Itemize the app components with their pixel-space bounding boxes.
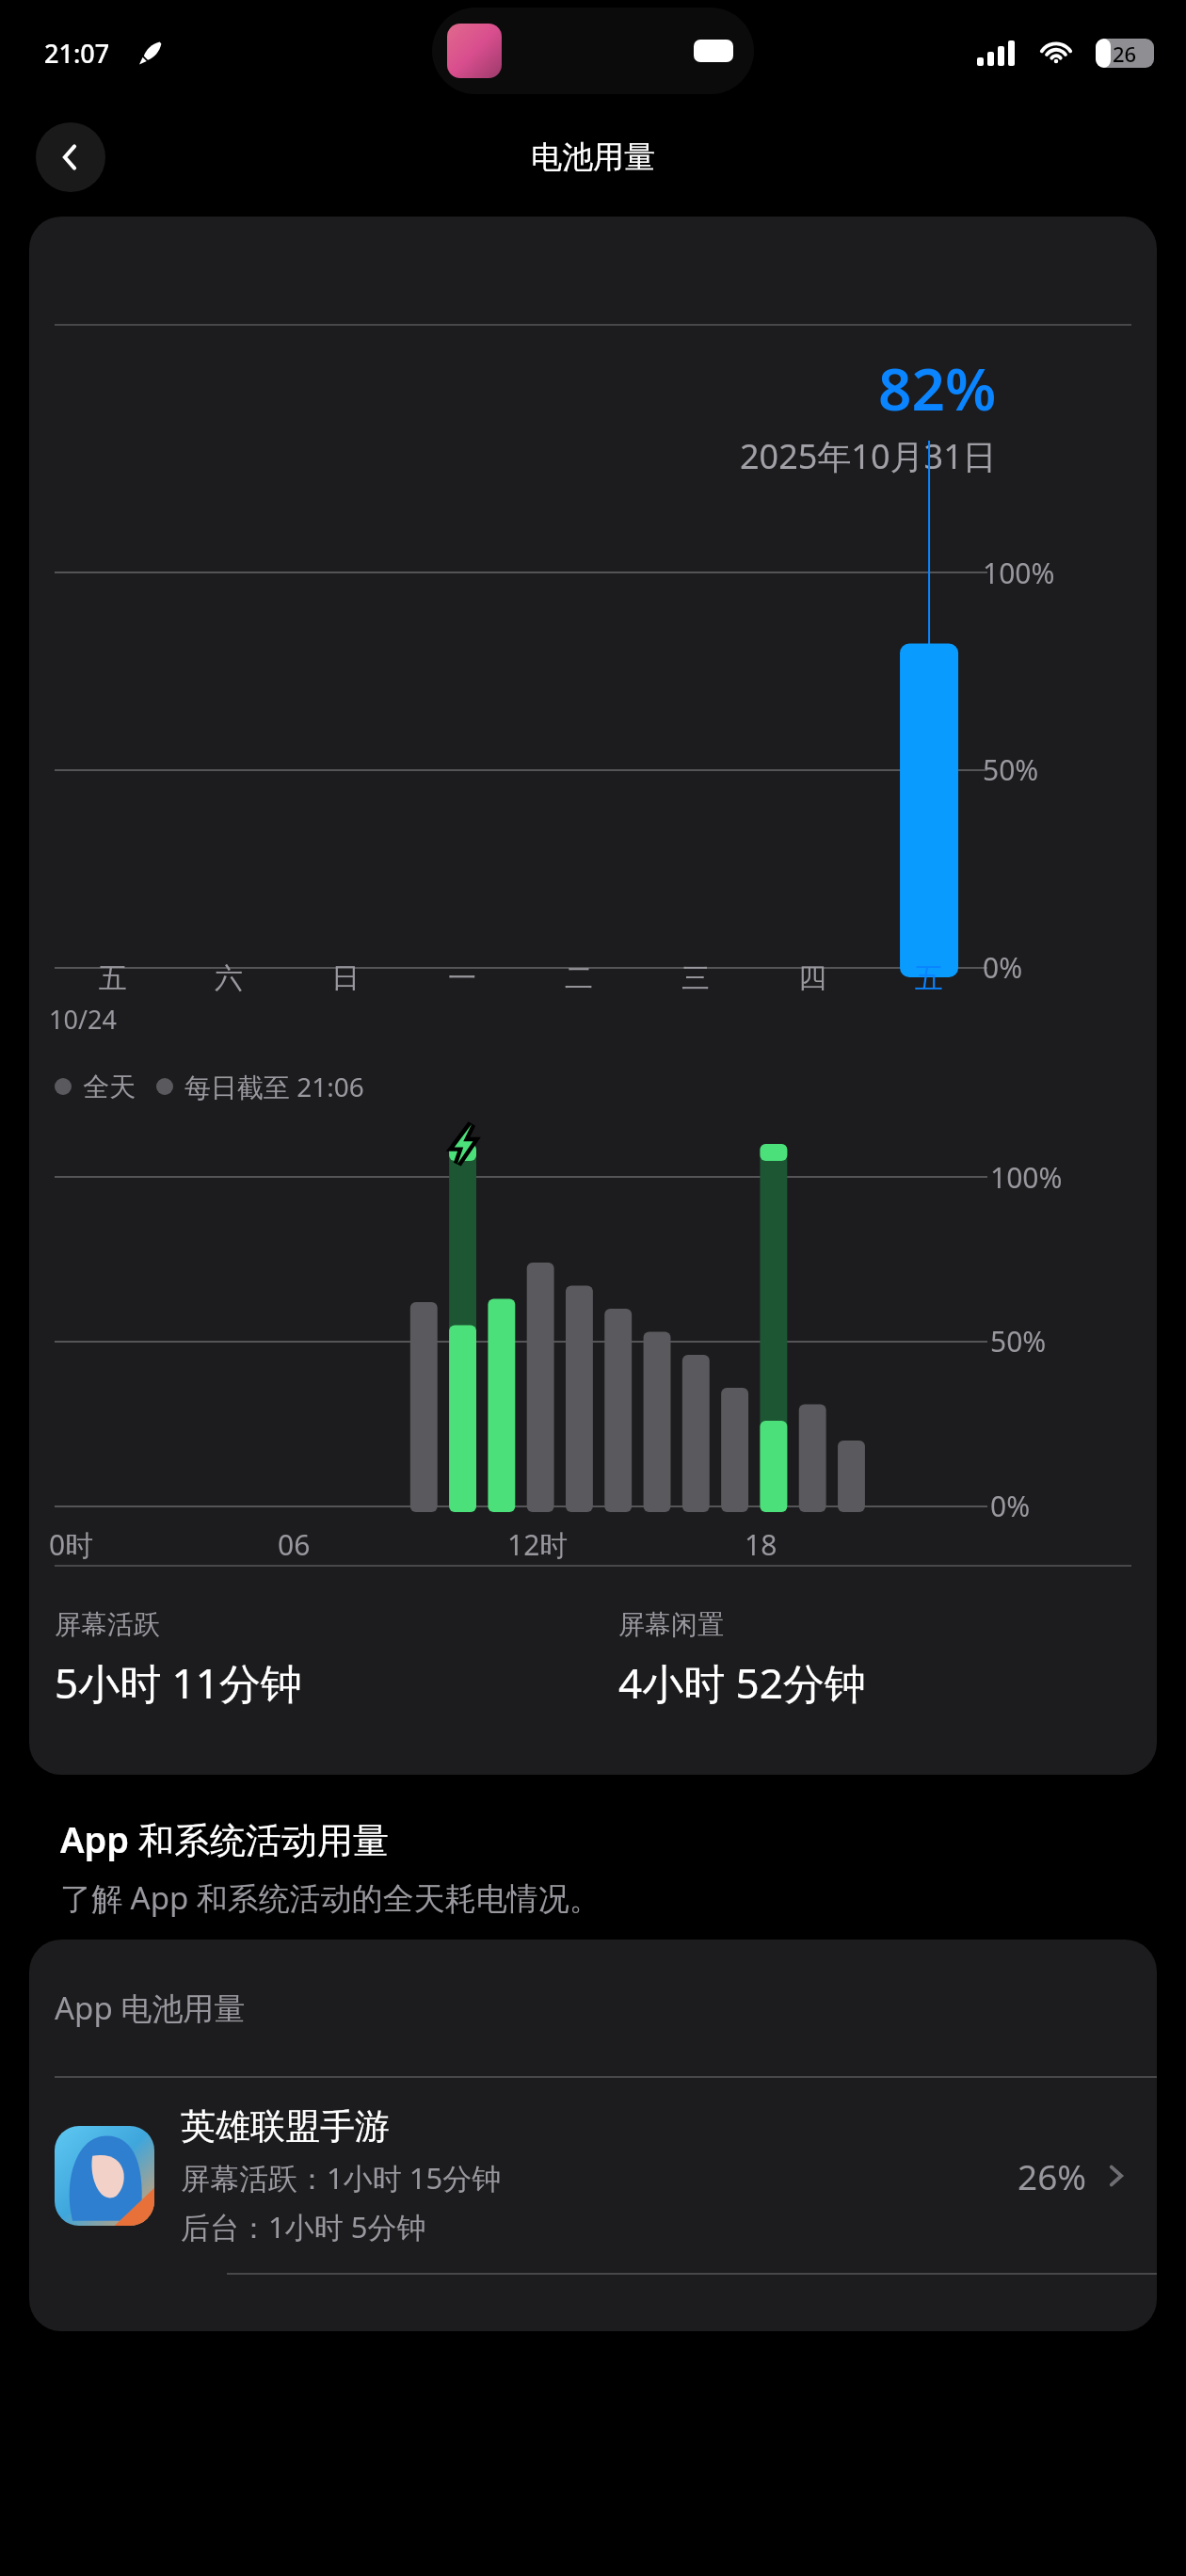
staticText: 英雄联盟手游 <box>181 2104 390 2149</box>
staticText: App 电池用量 <box>55 1987 246 2029</box>
staticText: 全天 <box>83 1071 136 1103</box>
staticText: 18 <box>745 1525 777 1564</box>
staticText: 100% <box>983 554 1055 592</box>
staticText: 4小时 52分钟 <box>618 1654 866 1711</box>
staticText: 21:07 <box>44 36 110 71</box>
staticText: 屏幕活跃：1小时 15分钟 <box>181 2158 502 2198</box>
staticText: 0时 <box>49 1525 94 1564</box>
staticText: 二 <box>565 960 593 996</box>
staticText: 每日截至 21:06 <box>184 1069 364 1104</box>
staticText: 06 <box>278 1525 311 1564</box>
staticText: 后台：1小时 5分钟 <box>181 2207 426 2246</box>
staticText: 电池用量 <box>531 137 655 177</box>
staticText: 26% <box>1018 2152 1087 2199</box>
staticText: 五 <box>915 960 943 996</box>
staticText: 12时 <box>507 1525 569 1564</box>
staticText: App 和系统活动用量 <box>60 1814 389 1863</box>
staticText: 50% <box>990 1322 1047 1360</box>
staticText: 10/24 <box>49 1002 117 1037</box>
staticText: 了解 App 和系统活动的全天耗电情况。 <box>60 1876 601 1919</box>
staticText: 0% <box>990 1487 1031 1525</box>
button[interactable]: Back <box>36 122 105 192</box>
staticText: 一 <box>448 960 476 996</box>
staticText: 0% <box>983 948 1023 987</box>
staticText: 四 <box>798 960 826 996</box>
button[interactable]: 英雄联盟手游 <box>29 2078 1157 2273</box>
staticText: 屏幕活跃 <box>55 1608 160 1641</box>
staticText: 5小时 11分钟 <box>55 1654 302 1711</box>
staticText: 日 <box>331 960 360 996</box>
staticText: 26 <box>1113 40 1137 68</box>
staticText: 100% <box>990 1158 1063 1197</box>
staticText: 屏幕闲置 <box>618 1608 724 1641</box>
staticText: 五 <box>99 960 127 996</box>
staticText: 六 <box>215 960 243 996</box>
staticText: 三 <box>681 960 710 996</box>
staticText: 82% <box>878 348 997 427</box>
staticText: 2025年10月31日 <box>740 433 997 479</box>
staticText: 50% <box>983 750 1039 789</box>
